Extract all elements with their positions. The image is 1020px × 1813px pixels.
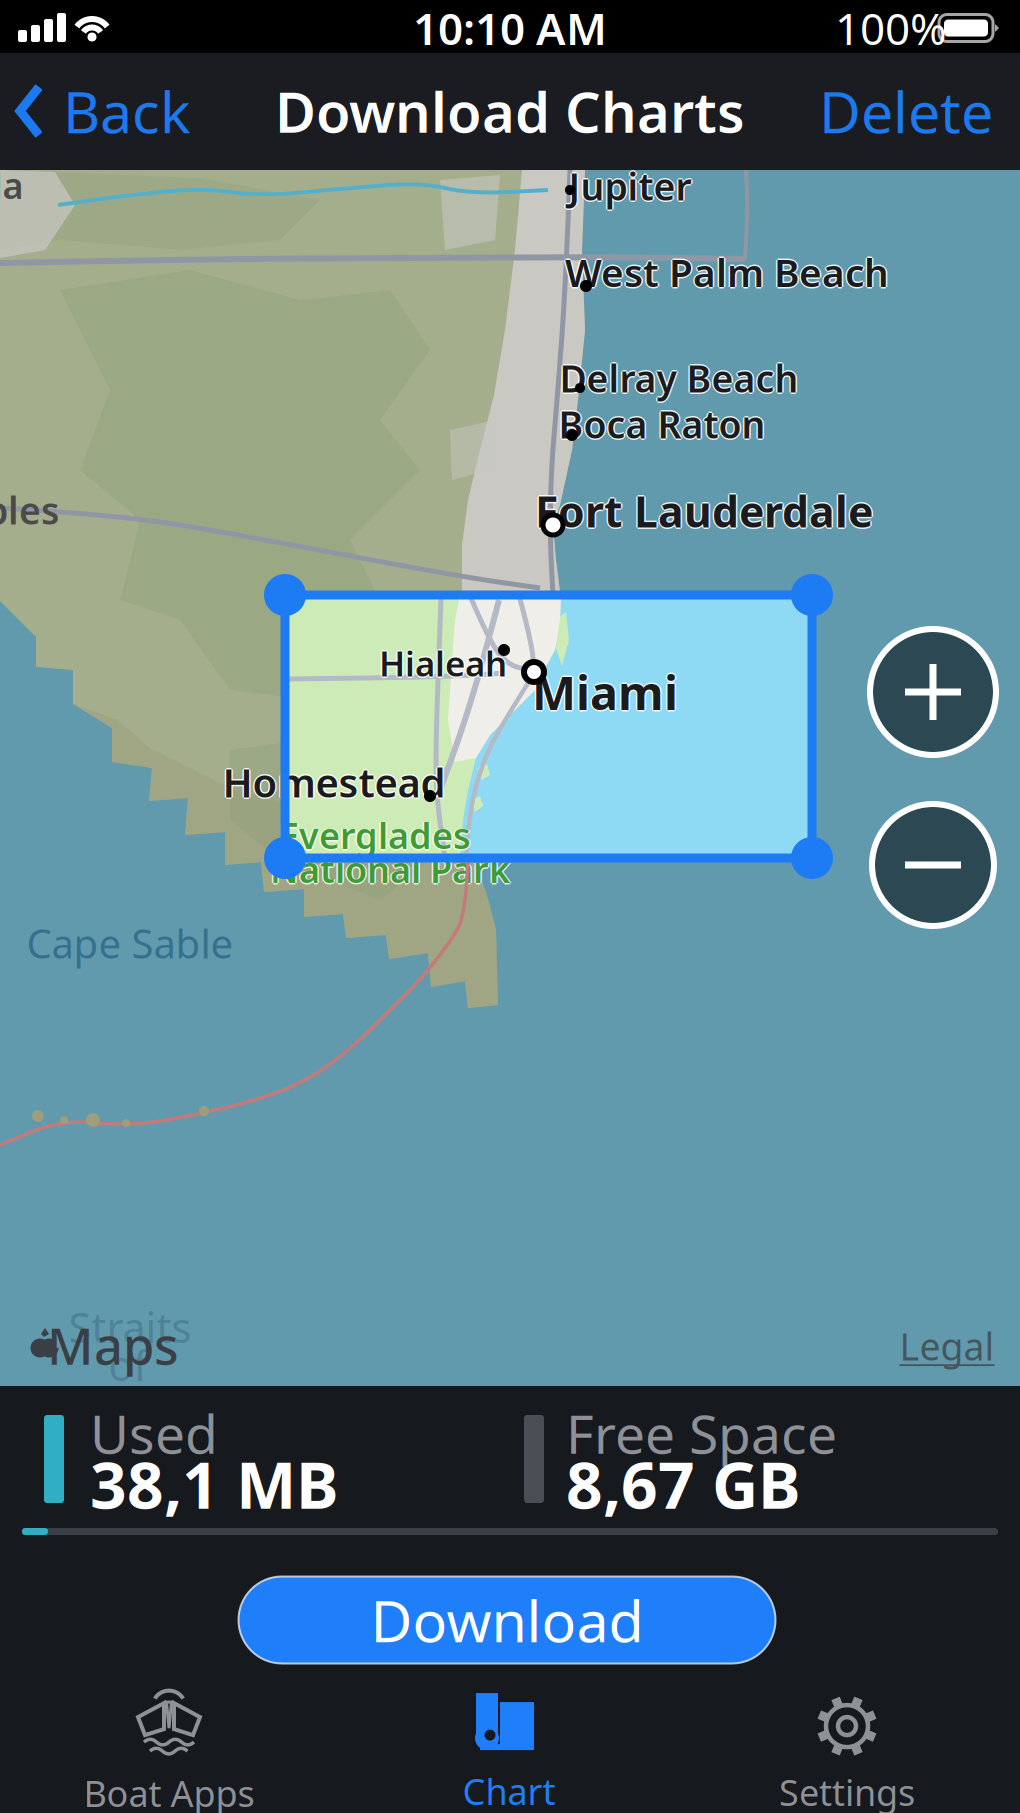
staticText: Homestead: [222, 757, 445, 810]
staticText: Boca Raton: [557, 399, 764, 449]
staticText: Delete: [819, 73, 993, 149]
staticText: Download: [370, 1582, 643, 1658]
staticText: Boca Raton: [558, 398, 765, 447]
staticText: Boca Raton: [558, 401, 765, 450]
staticText: Miami: [532, 661, 678, 723]
staticText: Hialeah: [377, 640, 505, 686]
staticText: Miami: [530, 661, 676, 723]
button[interactable]: Boat Apps: [44, 1693, 294, 1813]
button[interactable]: Zoom out: [867, 799, 999, 931]
staticText: West Palm Beach: [565, 245, 889, 296]
staticText: Fort Lauderdale: [536, 483, 874, 539]
staticText: Fort Lauderdale: [533, 483, 871, 539]
staticText: Fort Lauderdale: [535, 481, 873, 538]
staticText: West Palm Beach: [566, 246, 890, 298]
staticText: Used: [90, 1398, 218, 1468]
staticText: Delray Beach: [559, 355, 798, 404]
staticText: Jupiter: [567, 161, 690, 211]
staticText: Delray Beach: [559, 353, 798, 403]
staticText: Jupiter: [568, 160, 691, 209]
button[interactable]: Legal: [899, 1321, 994, 1371]
staticText: 8,67 GB: [566, 1441, 801, 1526]
button[interactable]: Chart: [384, 1693, 634, 1813]
staticText: Everglades: [279, 811, 471, 859]
staticText: Miami: [532, 662, 678, 724]
staticText: Fort Lauderdale: [535, 483, 873, 539]
staticText: Delray Beach: [558, 353, 797, 403]
staticText: Free Space: [566, 1398, 837, 1468]
staticText: Delray Beach: [561, 353, 800, 403]
staticText: Miami: [532, 659, 678, 721]
staticText: Everglades: [280, 811, 472, 859]
staticText: Hialeah: [379, 638, 507, 684]
staticText: Jupiter: [568, 161, 691, 211]
staticText: Chart: [462, 1767, 555, 1813]
staticText: Homestead: [221, 755, 444, 808]
staticText: Miami: [533, 661, 679, 723]
staticText: Homestead: [222, 755, 445, 808]
staticText: Straits: [68, 1300, 191, 1354]
button[interactable]: Download: [238, 1576, 775, 1663]
staticText: Jupiter: [570, 161, 693, 211]
staticText: Boca Raton: [558, 399, 765, 449]
staticText: Hialeah: [379, 640, 507, 686]
staticText: ples: [0, 485, 59, 535]
staticText: Homestead: [222, 754, 445, 807]
button[interactable]: Back: [17, 73, 191, 149]
staticText: West Palm Beach: [565, 248, 889, 299]
button[interactable]: Delete: [819, 73, 993, 149]
staticText: National Park: [270, 847, 510, 894]
button[interactable]: Zoom in: [867, 626, 999, 758]
staticText: West Palm Beach: [563, 246, 887, 298]
staticText: 10:10 AM: [413, 0, 607, 57]
staticText: Download Charts: [275, 74, 745, 148]
staticText: Fort Lauderdale: [535, 484, 873, 541]
staticText: National Park: [268, 845, 508, 893]
staticText: National Park: [271, 845, 511, 893]
staticText: Everglades: [279, 813, 471, 860]
staticText: Legal: [899, 1321, 994, 1371]
staticText: Cape Sable: [26, 916, 233, 969]
staticText: West Palm Beach: [565, 246, 889, 298]
staticText: la: [0, 161, 23, 209]
staticText: Back: [63, 73, 191, 149]
staticText: 100%: [835, 0, 947, 57]
button[interactable]: Settings: [722, 1693, 972, 1813]
staticText: Hialeah: [380, 640, 508, 686]
staticText: Maps: [47, 1311, 179, 1379]
staticText: Boca Raton: [560, 399, 767, 449]
staticText: 38,1 MB: [90, 1441, 339, 1526]
staticText: Boat Apps: [83, 1769, 254, 1813]
staticText: Jupiter: [568, 163, 691, 212]
staticText: of: [108, 1338, 147, 1392]
staticText: Hialeah: [379, 641, 507, 687]
staticText: National Park: [270, 845, 510, 893]
staticText: Everglades: [277, 811, 469, 859]
staticText: Homestead: [224, 755, 447, 808]
staticText: Settings: [779, 1768, 915, 1813]
staticText: Delray Beach: [559, 352, 798, 401]
